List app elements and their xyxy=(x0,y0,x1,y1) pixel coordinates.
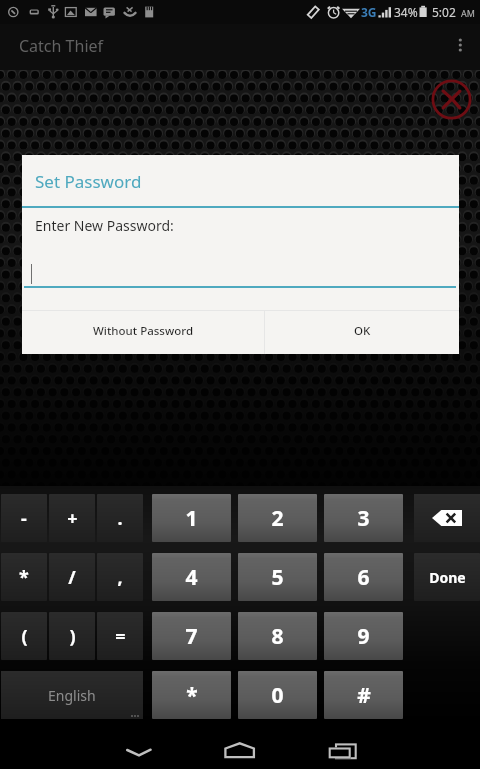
staticText: 7 xyxy=(185,622,198,651)
staticText: 6 xyxy=(357,563,370,592)
staticText: 8 xyxy=(271,622,284,651)
staticText: = xyxy=(115,624,126,649)
button[interactable]: 6 xyxy=(324,553,403,601)
button[interactable]: = xyxy=(97,612,143,660)
button[interactable]: Home xyxy=(210,722,270,769)
button[interactable]: * xyxy=(1,553,47,601)
button[interactable]: - xyxy=(1,494,47,542)
button[interactable]: 1 xyxy=(152,494,231,542)
staticText: * xyxy=(19,565,29,590)
staticText: . xyxy=(117,506,123,531)
button[interactable]: Close xyxy=(430,78,474,122)
staticText: * xyxy=(186,681,198,710)
staticText: 4 xyxy=(185,563,198,592)
staticText: 34% xyxy=(394,4,418,20)
button[interactable]: 5 xyxy=(238,553,317,601)
staticText: ) xyxy=(69,624,76,649)
staticText: 3 xyxy=(357,504,370,533)
button[interactable]: 4 xyxy=(152,553,231,601)
button[interactable]: More options xyxy=(440,24,480,70)
staticText: Catch Thief xyxy=(19,35,104,57)
staticText: - xyxy=(21,506,27,531)
staticText: OK xyxy=(354,323,371,339)
button[interactable]: ) xyxy=(49,612,95,660)
button[interactable]: 2 xyxy=(238,494,317,542)
staticText: 2 xyxy=(271,504,284,533)
button[interactable]: ( xyxy=(1,612,47,660)
staticText: / xyxy=(68,565,76,590)
staticText: AM xyxy=(461,7,475,19)
button[interactable]: 8 xyxy=(238,612,317,660)
button[interactable]: 0 xyxy=(238,671,317,719)
staticText: Set Password xyxy=(35,170,142,193)
staticText: 0 xyxy=(271,681,284,710)
button[interactable]: 9 xyxy=(324,612,403,660)
staticText: English xyxy=(48,686,96,705)
button[interactable]: + xyxy=(49,494,95,542)
staticText: 5 xyxy=(271,563,284,592)
staticText: 5:02 xyxy=(432,4,456,20)
staticText: + xyxy=(67,506,78,531)
button[interactable]: 7 xyxy=(152,612,231,660)
button[interactable]: Back xyxy=(109,722,169,769)
button[interactable]: * xyxy=(152,671,231,719)
staticText: 3G xyxy=(361,4,377,20)
staticText: 1 xyxy=(185,504,198,533)
button[interactable]: . xyxy=(97,494,143,542)
button[interactable]: English xyxy=(1,671,143,719)
staticText: Without Password xyxy=(93,323,194,339)
staticText: 9 xyxy=(357,622,370,651)
button[interactable]: Backspace xyxy=(414,494,480,542)
button[interactable]: , xyxy=(97,553,143,601)
staticText: Enter New Password: xyxy=(35,216,174,235)
button[interactable]: Recents xyxy=(312,722,372,769)
staticText: ( xyxy=(21,624,28,649)
button[interactable]: Without Password xyxy=(22,311,264,354)
staticText: # xyxy=(357,681,371,710)
button[interactable]: / xyxy=(49,553,95,601)
staticText: Done xyxy=(429,568,466,587)
button[interactable]: Done xyxy=(414,553,480,601)
button[interactable]: 3 xyxy=(324,494,403,542)
button[interactable]: OK xyxy=(265,311,459,354)
staticText: , xyxy=(117,565,123,590)
button[interactable]: # xyxy=(324,671,403,719)
